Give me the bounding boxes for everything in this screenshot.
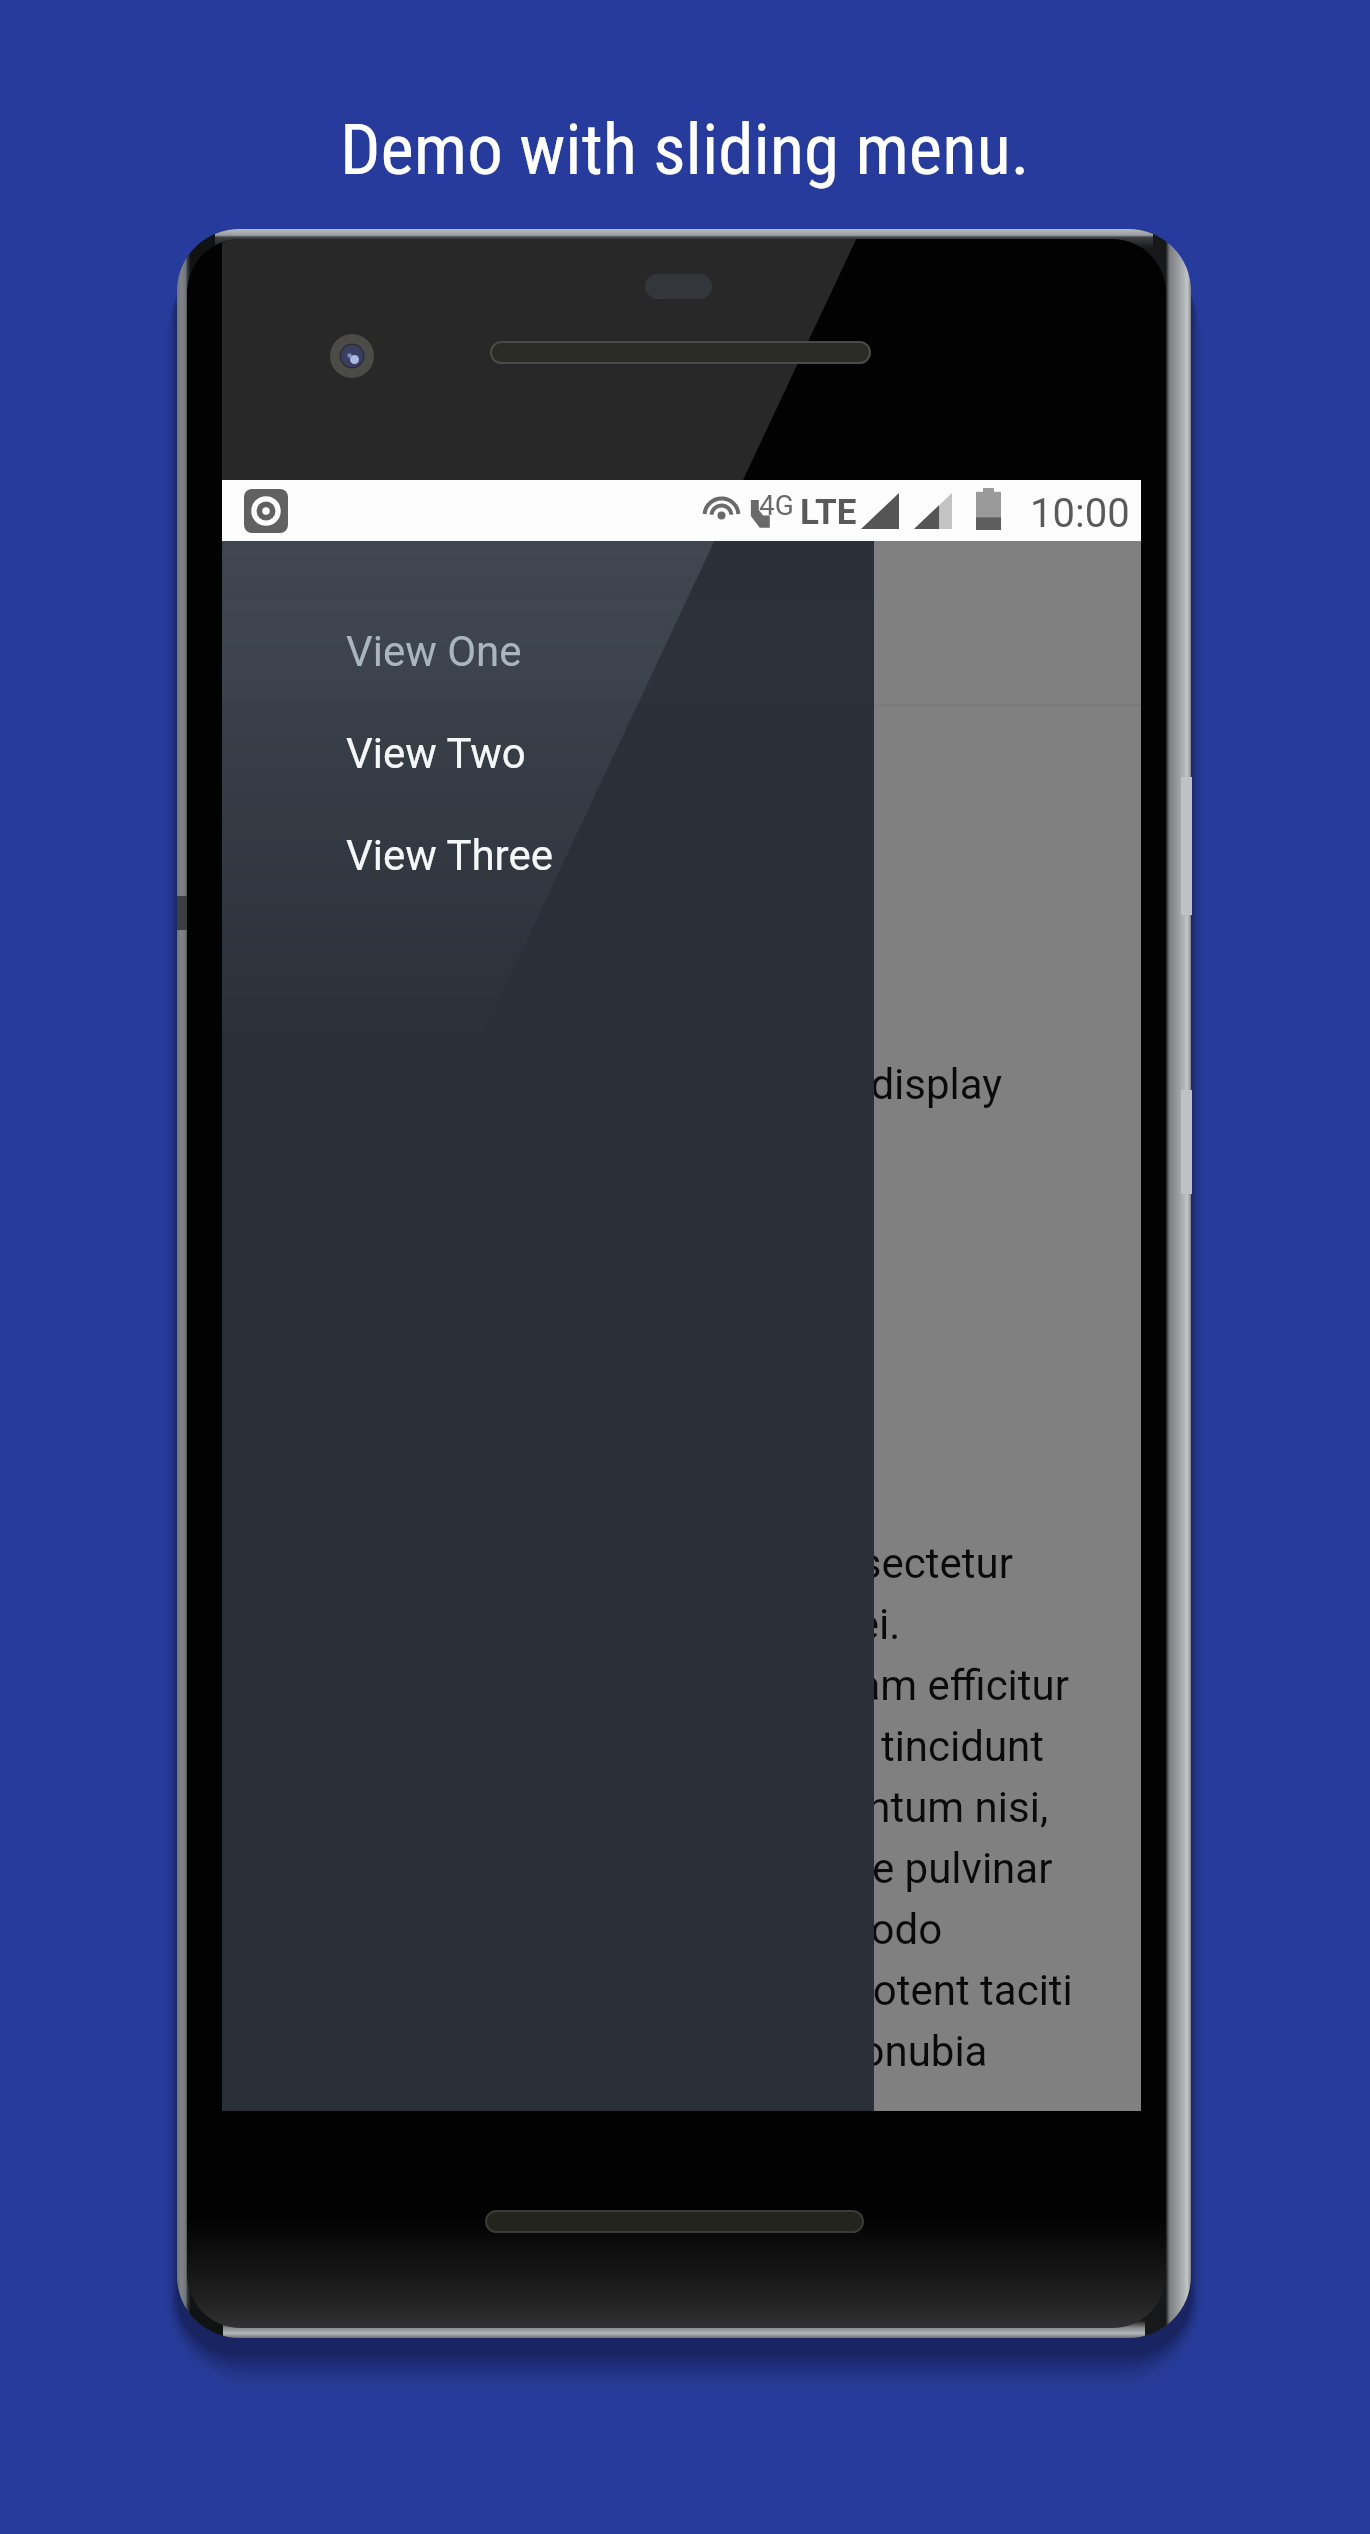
button[interactable]: View Two	[222, 702, 874, 804]
staticText: 10:00	[1030, 490, 1130, 537]
staticText: This is the second fragment to be displa…	[236, 1060, 1003, 1109]
button[interactable]: View One	[222, 600, 874, 702]
button[interactable]: App notification	[244, 489, 288, 533]
staticText: View Two	[346, 729, 526, 778]
button[interactable]: View Three	[222, 804, 874, 906]
staticText: View Three	[346, 831, 553, 880]
staticText: Demo with sliding menu.	[340, 108, 1030, 191]
staticText: 4G	[759, 489, 794, 522]
staticText: View One	[346, 627, 522, 676]
staticText: Lorem ipsum dolor sit amet, consectetur …	[258, 1539, 1073, 2077]
staticText: LTE	[800, 492, 857, 533]
